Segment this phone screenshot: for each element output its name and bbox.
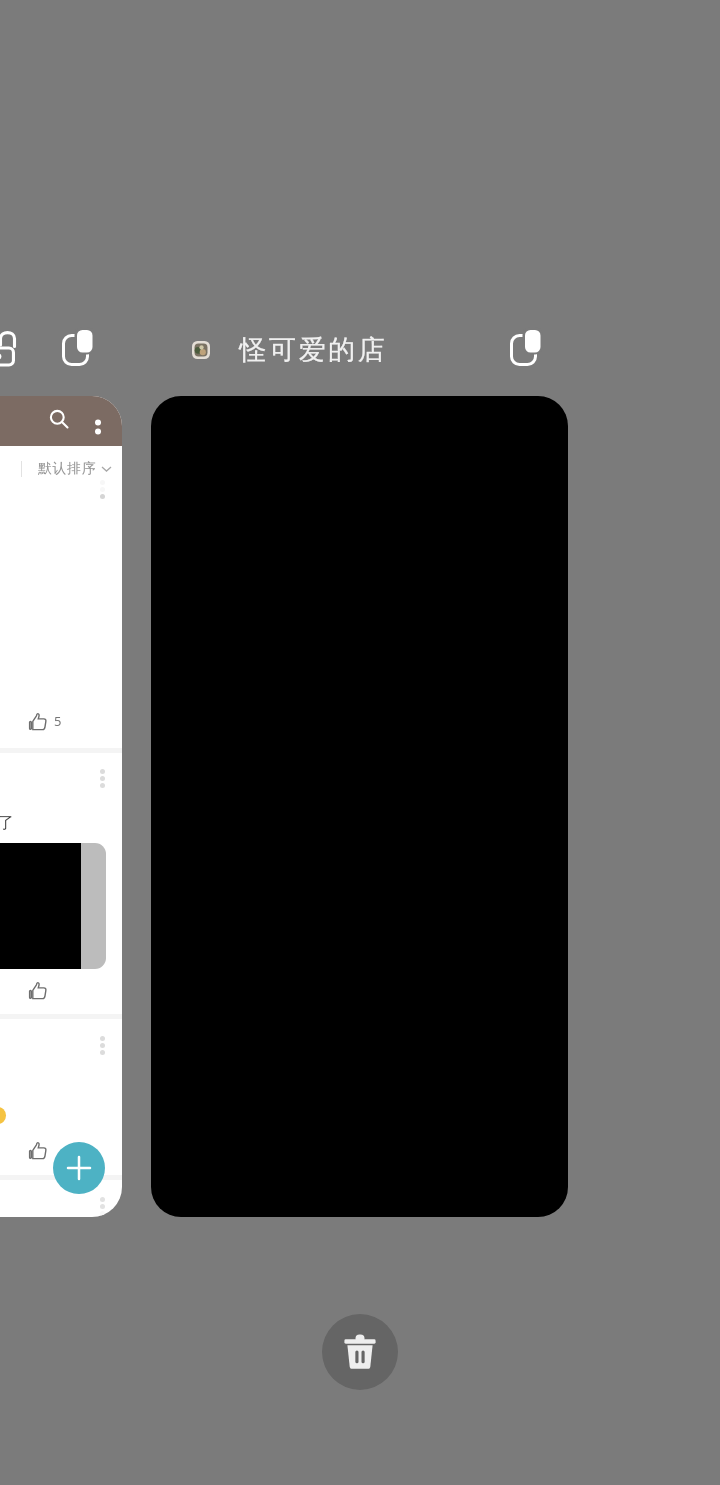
staticText: 默认排序	[38, 460, 97, 478]
button[interactable]: 默认排序	[21, 457, 111, 481]
button[interactable]	[151, 396, 568, 1217]
button[interactable]: More options	[76, 397, 120, 441]
button[interactable]: Add	[53, 1142, 105, 1194]
staticText: 怪可爱的店	[238, 333, 386, 367]
button[interactable]: Split screen left	[61, 329, 93, 367]
button[interactable]: Split screen right	[509, 329, 541, 367]
button[interactable]: Search	[37, 397, 81, 441]
button[interactable]: Clear all	[322, 1314, 398, 1390]
staticText: 了	[0, 813, 14, 833]
button[interactable]: Lock app	[0, 329, 32, 369]
button[interactable]: Search	[0, 396, 122, 1217]
button[interactable]: 怪可爱的店	[192, 325, 386, 375]
staticText: 5	[54, 712, 62, 730]
